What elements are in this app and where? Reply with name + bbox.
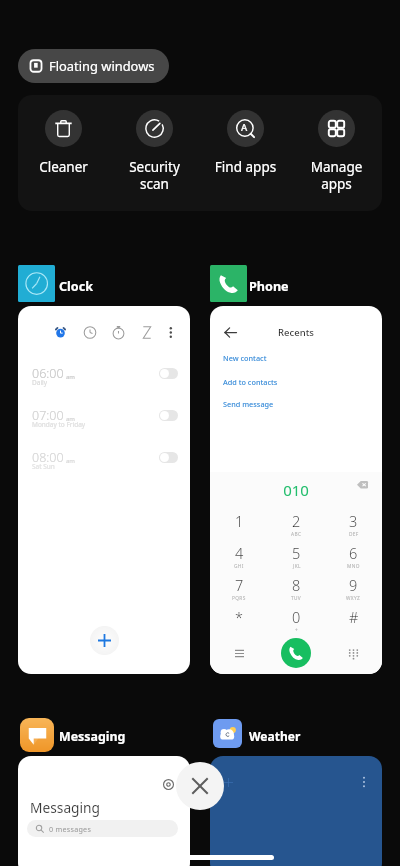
staticText: 0 messages bbox=[49, 824, 92, 834]
button[interactable]: 3 bbox=[325, 508, 382, 540]
staticText: * bbox=[235, 607, 243, 627]
staticText: 4 bbox=[235, 543, 244, 563]
staticText: Floating windows bbox=[49, 57, 155, 75]
staticText: Phone bbox=[249, 278, 289, 295]
staticText: Weather bbox=[249, 728, 301, 744]
staticText: 07:00 bbox=[32, 407, 64, 424]
button[interactable]: # bbox=[325, 604, 382, 636]
staticText: WXYZ bbox=[346, 595, 361, 602]
staticText: DEF bbox=[349, 531, 359, 538]
button[interactable]: 07:00 bbox=[18, 407, 190, 433]
staticText: PQRS bbox=[232, 595, 246, 602]
staticText: Cleaner bbox=[18, 158, 109, 176]
button[interactable]: 08:00 bbox=[18, 449, 190, 475]
staticText: Monday to Friday bbox=[32, 420, 86, 429]
button[interactable]: 06:00 bbox=[18, 365, 190, 391]
staticText: 06:00 bbox=[32, 365, 64, 382]
staticText: # bbox=[349, 607, 359, 627]
button[interactable]: Add to contacts bbox=[223, 377, 278, 387]
button[interactable]: Account bbox=[18, 756, 190, 866]
staticText: 1 bbox=[235, 511, 244, 531]
staticText: 8 bbox=[292, 575, 301, 595]
staticText: Messaging bbox=[30, 798, 101, 817]
staticText: JKL bbox=[293, 563, 301, 570]
button[interactable]: More options bbox=[354, 772, 374, 792]
button[interactable]: Recents bbox=[210, 306, 382, 674]
button[interactable]: Call bbox=[281, 638, 311, 668]
button[interactable]: Security scan bbox=[109, 95, 200, 211]
staticText: 7 bbox=[235, 575, 244, 595]
button[interactable]: Close all bbox=[176, 762, 224, 810]
button[interactable]: 8 bbox=[268, 572, 325, 604]
button[interactable]: Call log bbox=[227, 641, 251, 665]
staticText: Daily bbox=[32, 378, 48, 387]
staticText: am bbox=[66, 373, 75, 381]
button[interactable]: Backspace bbox=[351, 475, 373, 497]
staticText: Sat Sun bbox=[32, 462, 55, 471]
staticText: 6 bbox=[349, 543, 358, 563]
staticText: 9 bbox=[349, 575, 358, 595]
staticText: Find apps bbox=[200, 158, 291, 176]
staticText: Clock bbox=[59, 278, 94, 295]
button[interactable]: More options bbox=[210, 756, 382, 866]
staticText: MNO bbox=[347, 563, 360, 570]
button[interactable]: A bbox=[200, 95, 291, 211]
staticText: ABC bbox=[291, 531, 302, 538]
staticText: Security scan bbox=[109, 158, 200, 193]
staticText: Messaging bbox=[59, 728, 126, 745]
button[interactable]: Floating windows bbox=[18, 49, 169, 83]
button[interactable]: 6 bbox=[325, 540, 382, 572]
button[interactable]: 2 bbox=[268, 508, 325, 540]
button[interactable]: 1 bbox=[210, 508, 268, 540]
staticText: GHI bbox=[234, 563, 244, 570]
staticText: Recents bbox=[210, 326, 382, 339]
staticText: 5 bbox=[292, 543, 301, 563]
button[interactable]: 9 bbox=[325, 572, 382, 604]
button[interactable]: 5 bbox=[268, 540, 325, 572]
button[interactable]: 7 bbox=[210, 572, 268, 604]
staticText: A bbox=[241, 121, 248, 134]
button[interactable]: Send message bbox=[223, 399, 274, 409]
staticText: 010 bbox=[210, 480, 382, 500]
staticText: 2 bbox=[292, 511, 301, 531]
button[interactable]: Cleaner bbox=[18, 95, 109, 211]
button[interactable]: Manage apps bbox=[291, 95, 382, 211]
staticText: 0 bbox=[292, 607, 301, 627]
staticText: am bbox=[66, 415, 75, 423]
staticText: 08:00 bbox=[32, 449, 64, 466]
button[interactable]: 0 messages bbox=[27, 820, 178, 837]
button[interactable]: 4 bbox=[210, 540, 268, 572]
button[interactable]: 0 bbox=[268, 604, 325, 636]
button[interactable]: Account bbox=[158, 774, 178, 794]
staticText: + bbox=[295, 627, 299, 634]
staticText: TUV bbox=[291, 595, 302, 602]
staticText: 3 bbox=[349, 511, 358, 531]
button[interactable]: Add alarm bbox=[90, 626, 119, 655]
button[interactable]: Keypad bbox=[341, 641, 365, 665]
staticText: am bbox=[66, 457, 75, 465]
button[interactable]: New contact bbox=[223, 353, 267, 363]
button[interactable]: * bbox=[210, 604, 268, 636]
button[interactable]: 06:00 bbox=[18, 306, 190, 674]
staticText: Manage apps bbox=[291, 158, 382, 193]
